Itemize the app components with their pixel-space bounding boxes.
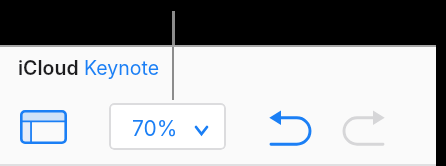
button[interactable]: Undo	[269, 109, 313, 147]
button[interactable]: Redo	[341, 109, 385, 147]
button[interactable]: 70%	[109, 103, 226, 150]
button[interactable]: View options	[20, 110, 67, 144]
staticText: 70%	[132, 116, 178, 141]
staticText: iCloud Keynote	[18, 56, 160, 80]
